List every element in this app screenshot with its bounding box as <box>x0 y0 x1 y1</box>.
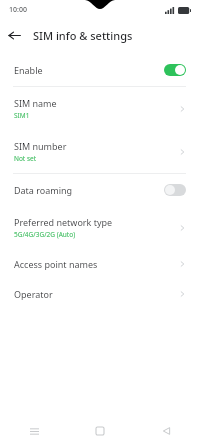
button[interactable]: Data roaming <box>0 174 199 206</box>
button[interactable]: Operator <box>0 279 199 309</box>
staticText: Access point names <box>14 258 178 270</box>
staticText: SIM number <box>14 140 67 152</box>
button[interactable]: Preferred network type <box>0 206 199 249</box>
button[interactable]: Home <box>88 419 112 443</box>
button[interactable]: Access point names <box>0 249 199 279</box>
staticText: Preferred network type <box>14 216 113 228</box>
button[interactable]: SIM name <box>0 87 199 130</box>
staticText: 10:00 <box>9 5 27 15</box>
button[interactable]: Recent apps <box>22 419 46 443</box>
staticText: 5G/4G/3G/2G (Auto) <box>14 230 76 239</box>
button[interactable]: Back <box>154 419 178 443</box>
button[interactable]: SIM number <box>0 130 199 173</box>
button[interactable]: Back <box>0 21 28 49</box>
staticText: Data roaming <box>14 184 164 196</box>
staticText: SIM info & settings <box>33 28 133 43</box>
staticText: Not set <box>14 154 37 163</box>
staticText: SIM1 <box>14 111 30 120</box>
staticText: SIM name <box>14 97 57 109</box>
button[interactable]: Enable <box>0 54 199 86</box>
staticText: Operator <box>14 288 178 300</box>
staticText: Enable <box>14 64 164 76</box>
